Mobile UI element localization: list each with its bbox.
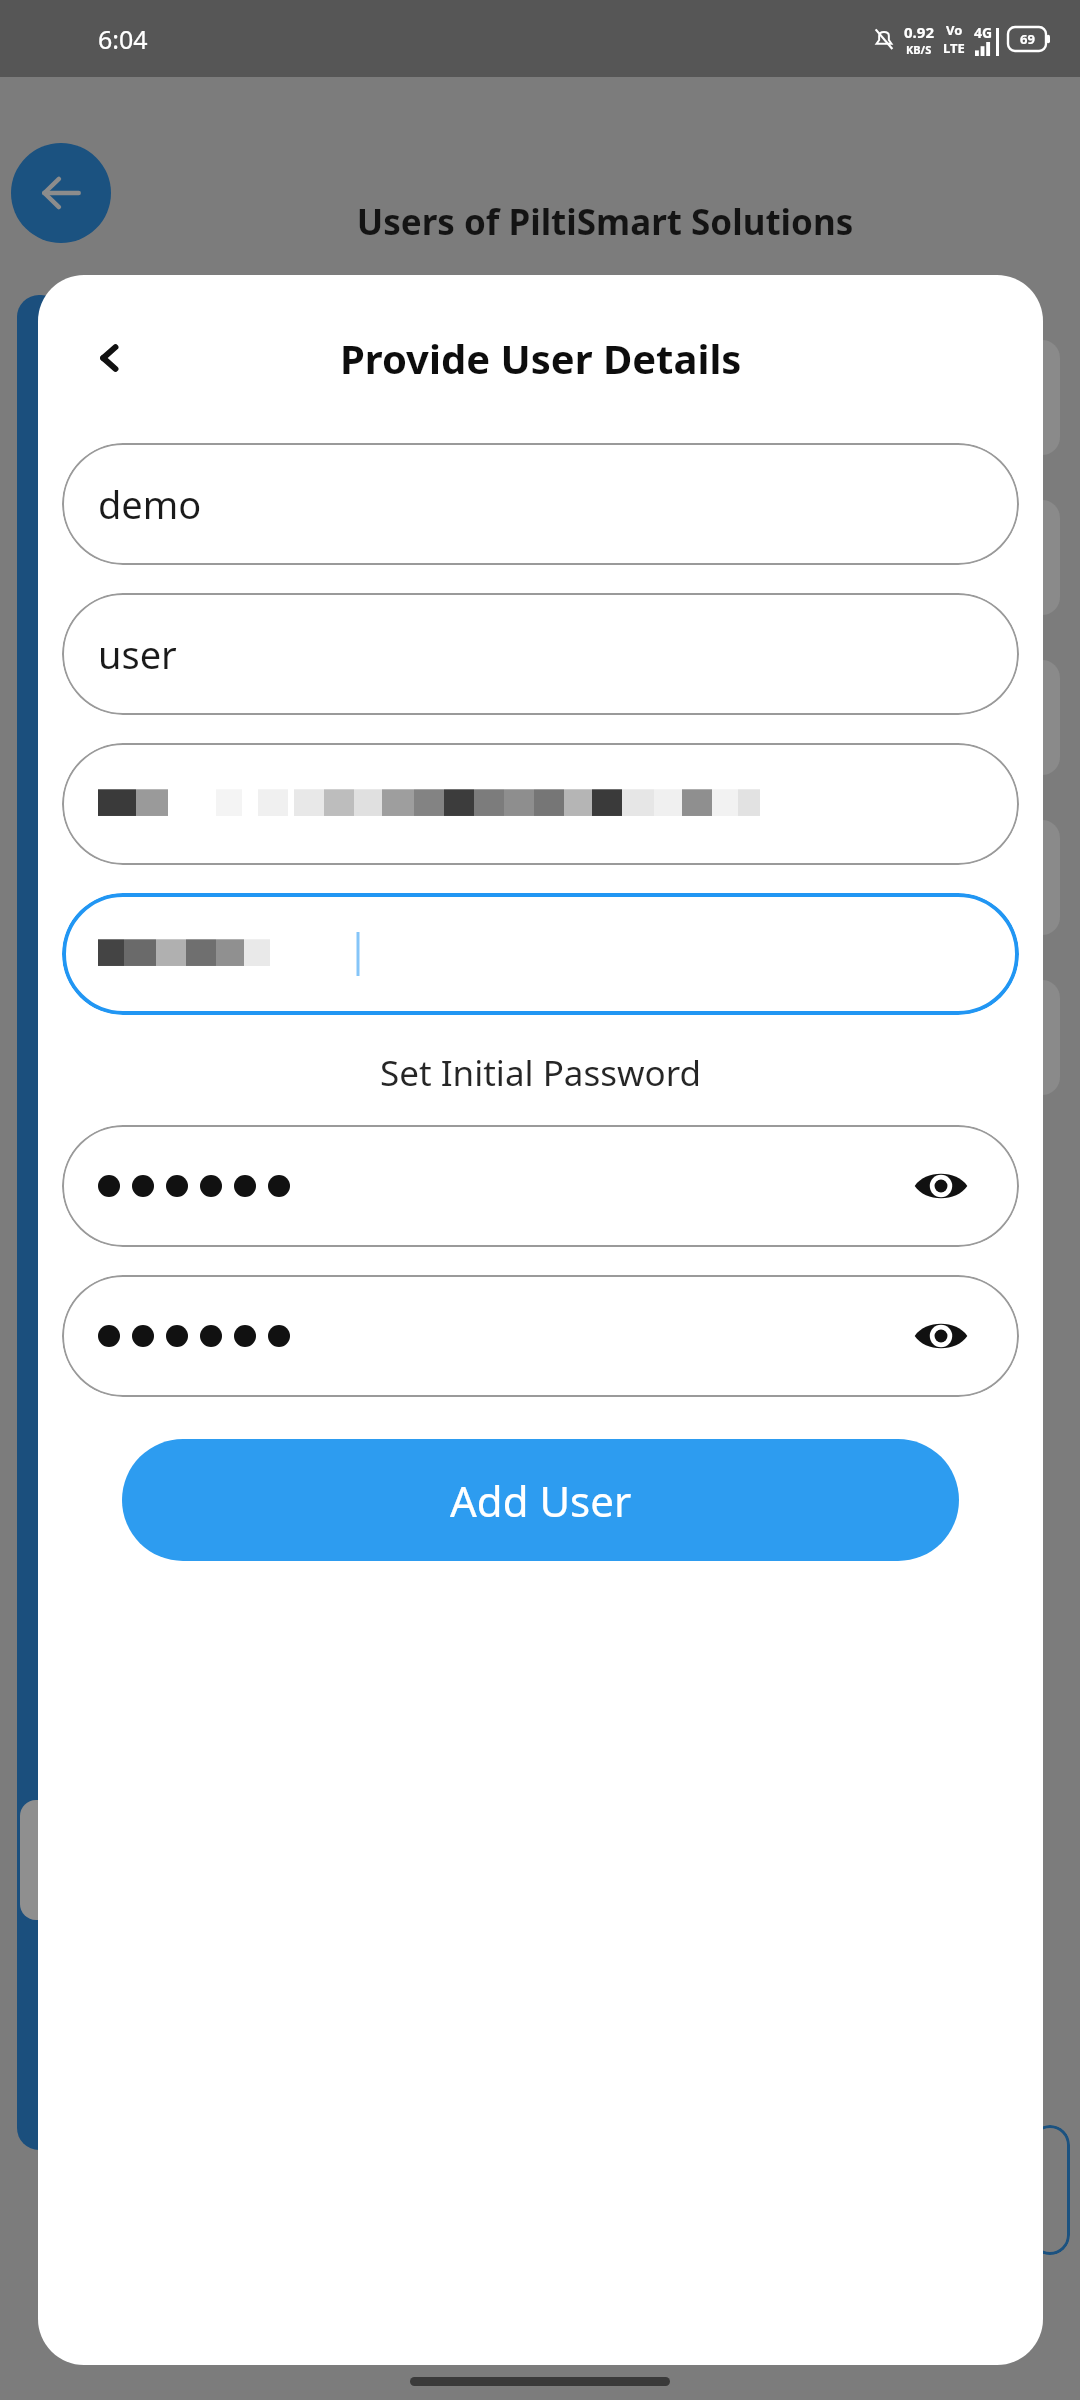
button[interactable]: demo: [62, 443, 1019, 565]
staticText: Vo: [946, 21, 963, 39]
button[interactable]: Show password: [905, 1150, 977, 1222]
button[interactable]: Show password: [905, 1300, 977, 1372]
button[interactable]: user: [62, 593, 1019, 715]
button[interactable]: Show password: [62, 1275, 1019, 1397]
staticText: Set Initial Password: [38, 1049, 1043, 1097]
button[interactable]: [62, 743, 1019, 865]
staticText: Provide User Details: [340, 331, 742, 385]
button[interactable]: Back: [80, 328, 140, 388]
staticText: user: [98, 628, 177, 680]
staticText: 69: [1020, 30, 1035, 48]
button[interactable]: Add User: [122, 1439, 959, 1561]
button[interactable]: Back: [11, 143, 111, 243]
staticText: LTE: [943, 39, 965, 57]
staticText: KB/S: [906, 42, 932, 57]
staticText: 6:04: [98, 22, 148, 56]
staticText: demo: [98, 478, 202, 530]
staticText: Add User: [450, 1472, 632, 1529]
button[interactable]: [62, 893, 1019, 1015]
staticText: Users of PiltiSmart Solutions: [160, 198, 1050, 246]
button[interactable]: Show password: [62, 1125, 1019, 1247]
staticText: 4G: [974, 23, 993, 42]
staticText: 0.92: [904, 22, 934, 42]
